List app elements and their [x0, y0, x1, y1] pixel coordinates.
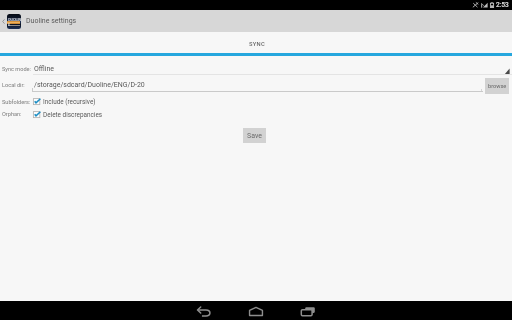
button[interactable]: Home — [249, 307, 263, 316]
button[interactable]: DUOLINE — [0, 10, 512, 32]
staticText: Subfolders: — [2, 99, 31, 106]
staticText: Duoline settings — [26, 17, 77, 25]
staticText: 2:53 — [496, 1, 509, 9]
staticText: Offline — [34, 65, 55, 73]
button[interactable]: Checkbox — [33, 111, 42, 118]
staticText: DUOLINE — [8, 17, 21, 27]
staticText: Save — [247, 132, 262, 140]
staticText: Orphan: — [2, 111, 22, 118]
staticText: browse — [488, 83, 507, 90]
button[interactable]: Recent apps — [301, 307, 316, 316]
staticText: Delete discrepancies — [43, 111, 103, 119]
button[interactable]: SYNC — [249, 41, 265, 48]
button[interactable]: Back — [197, 307, 212, 316]
button[interactable]: Save — [243, 128, 266, 143]
staticText: Sync mode: — [2, 66, 31, 73]
button[interactable]: Checkbox — [33, 98, 42, 105]
staticText: Include (recursive) — [43, 98, 96, 106]
button[interactable]: browse — [485, 78, 509, 94]
staticText: /storage/sdcard/Duoline/ENG/D-20 — [34, 81, 145, 89]
staticText: Local dir: — [2, 82, 25, 89]
staticText: SYNC — [249, 41, 265, 48]
button[interactable]: Sync mode — [501, 66, 510, 75]
